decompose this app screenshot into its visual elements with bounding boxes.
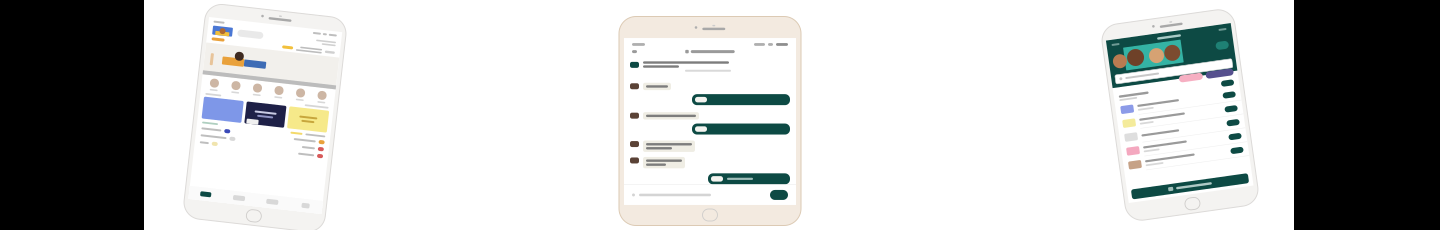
button[interactable]: Tab <box>231 194 265 207</box>
button[interactable] <box>1117 137 1243 151</box>
button[interactable]: Tab <box>198 194 231 207</box>
button[interactable] <box>1117 151 1243 165</box>
button[interactable] <box>1117 109 1243 123</box>
button[interactable] <box>1117 95 1243 109</box>
button[interactable]: Primary action <box>1117 182 1243 195</box>
button[interactable]: Send <box>770 190 788 200</box>
button[interactable]: Tab <box>265 194 298 207</box>
button[interactable]: Tab <box>298 194 332 207</box>
button[interactable]: Back <box>632 50 637 53</box>
button[interactable] <box>1117 123 1243 137</box>
